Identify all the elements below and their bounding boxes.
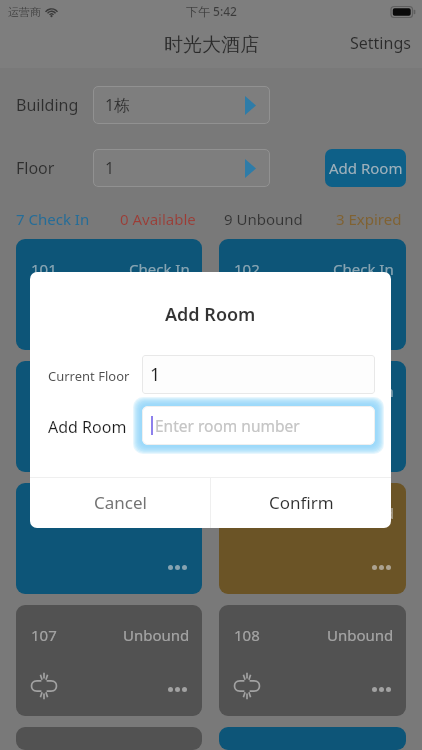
button[interactable]: 101 <box>16 239 202 350</box>
staticText: 下午 5:42 <box>186 3 237 19</box>
staticText: Check In <box>129 381 190 401</box>
staticText: Unbound <box>123 625 190 645</box>
staticText: 102 <box>234 259 260 279</box>
staticText: 3 Expired <box>336 209 402 229</box>
staticText: Unbound <box>327 625 394 645</box>
other: Unbound <box>234 675 260 697</box>
staticText: 101 <box>31 259 57 279</box>
other: Expand <box>245 96 256 115</box>
staticText: Building <box>16 94 79 116</box>
staticText: Check In <box>129 259 190 279</box>
other: Expand <box>245 159 256 178</box>
staticText: Check In <box>333 381 394 401</box>
staticText: Check In <box>129 503 190 523</box>
staticText: Expired <box>341 503 394 523</box>
button[interactable]: Settings <box>350 32 411 54</box>
staticText: 1栋 <box>105 94 131 116</box>
button[interactable]: 103 <box>16 361 202 472</box>
button[interactable]: 7 Check In <box>0 209 105 229</box>
button[interactable]: 1 <box>142 355 375 394</box>
staticText: 108 <box>234 625 260 645</box>
button[interactable]: Cancel <box>30 477 210 528</box>
button[interactable]: 106 <box>219 483 406 594</box>
staticText: 0 Available <box>120 209 196 229</box>
staticText: 1 <box>105 157 115 179</box>
button[interactable]: Add Room <box>325 149 406 187</box>
staticText: 1 <box>150 362 161 387</box>
staticText: 107 <box>31 625 57 645</box>
button[interactable]: 1 <box>93 149 270 187</box>
staticText: Cancel <box>94 491 147 514</box>
staticText: 7 Check In <box>16 209 90 229</box>
button[interactable]: 110 <box>219 727 406 750</box>
button[interactable]: 0 Available <box>105 209 210 229</box>
staticText: 运营商 <box>8 5 41 19</box>
other: Unbound <box>31 675 57 697</box>
staticText: Add Room <box>48 416 127 438</box>
staticText: Current Floor <box>48 367 130 385</box>
staticText: Enter room number <box>155 415 300 436</box>
staticText: Check In <box>333 259 394 279</box>
button[interactable]: 9 Unbound <box>210 209 316 229</box>
staticText: Add Room <box>329 158 403 178</box>
button[interactable]: 107 <box>16 605 202 716</box>
staticText: Confirm <box>269 491 334 514</box>
staticText: Add Room <box>165 302 256 327</box>
staticText: 104 <box>234 381 260 401</box>
button[interactable]: 109 <box>16 727 202 750</box>
button[interactable]: Enter room number <box>142 406 375 445</box>
button[interactable]: 3 Expired <box>316 209 422 229</box>
button[interactable]: 105 <box>16 483 202 594</box>
button[interactable]: 108 <box>219 605 406 716</box>
staticText: Floor <box>16 157 55 179</box>
button[interactable]: 102 <box>219 239 406 350</box>
other: Battery full <box>391 6 416 18</box>
button[interactable]: 1栋 <box>93 86 270 124</box>
staticText: 时光大酒店 <box>164 33 259 57</box>
staticText: 9 Unbound <box>224 209 303 229</box>
button[interactable]: Confirm <box>211 477 391 528</box>
button[interactable]: 104 <box>219 361 406 472</box>
